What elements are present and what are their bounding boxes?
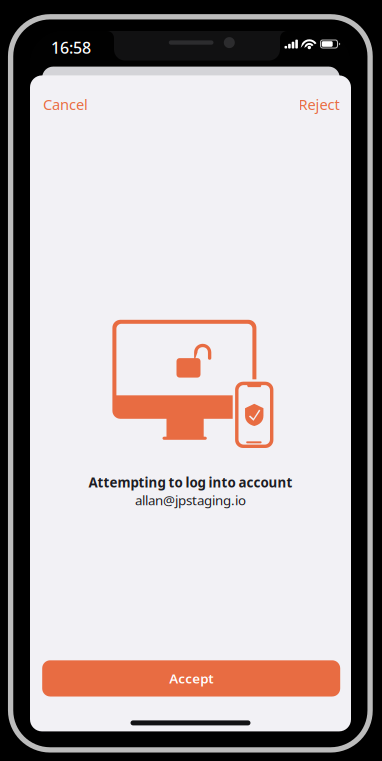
staticText: Cancel (43, 95, 88, 114)
button[interactable]: Reject (281, 86, 351, 122)
staticText: Accept (169, 669, 213, 687)
staticText: 16:58 (51, 37, 91, 58)
button[interactable]: Accept (42, 660, 340, 696)
staticText: Attempting to log into account (88, 473, 292, 491)
staticText: Reject (298, 95, 339, 114)
staticText: allan@jpstaging.io (135, 491, 246, 509)
button[interactable]: Cancel (30, 86, 101, 122)
